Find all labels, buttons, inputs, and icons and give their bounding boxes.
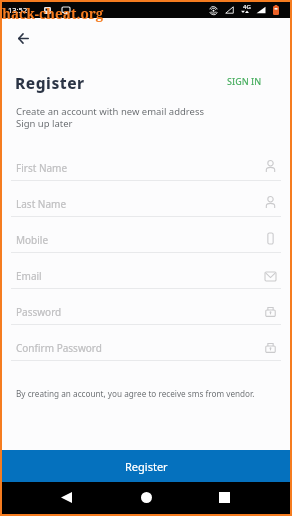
button[interactable]: Confirm Password [2, 324, 290, 360]
button[interactable]: Sign up later [16, 117, 73, 130]
staticText: Create an account with new email address [16, 105, 205, 118]
button[interactable]: SIGN IN [216, 73, 262, 89]
staticText: Register [15, 72, 85, 93]
button[interactable]: Email [2, 252, 290, 288]
staticText: SIGN IN [227, 75, 262, 87]
staticText: 4G [243, 3, 251, 11]
staticText: hack-cheat.org [2, 5, 104, 23]
staticText: Mobile [16, 233, 49, 247]
staticText: Email [16, 269, 42, 283]
button[interactable]: Home [126, 482, 166, 514]
staticText: Sign up later [16, 117, 73, 130]
button[interactable]: Password [2, 288, 290, 324]
button[interactable]: Back [10, 25, 36, 51]
staticText: First Name [16, 161, 68, 175]
button[interactable]: Mobile [2, 216, 290, 252]
button[interactable]: First Name [2, 144, 290, 180]
staticText: Password [16, 305, 62, 319]
staticText: By creating an account, you agree to rec… [16, 388, 255, 399]
staticText: 13:52 [8, 5, 28, 15]
button[interactable]: Register [2, 450, 290, 482]
staticText: Confirm Password [16, 341, 102, 355]
staticText: Register [125, 459, 168, 474]
button[interactable]: Recent apps [204, 482, 244, 514]
button[interactable]: Last Name [2, 180, 290, 216]
staticText: Last Name [16, 197, 67, 211]
button[interactable]: Back [45, 482, 126, 514]
